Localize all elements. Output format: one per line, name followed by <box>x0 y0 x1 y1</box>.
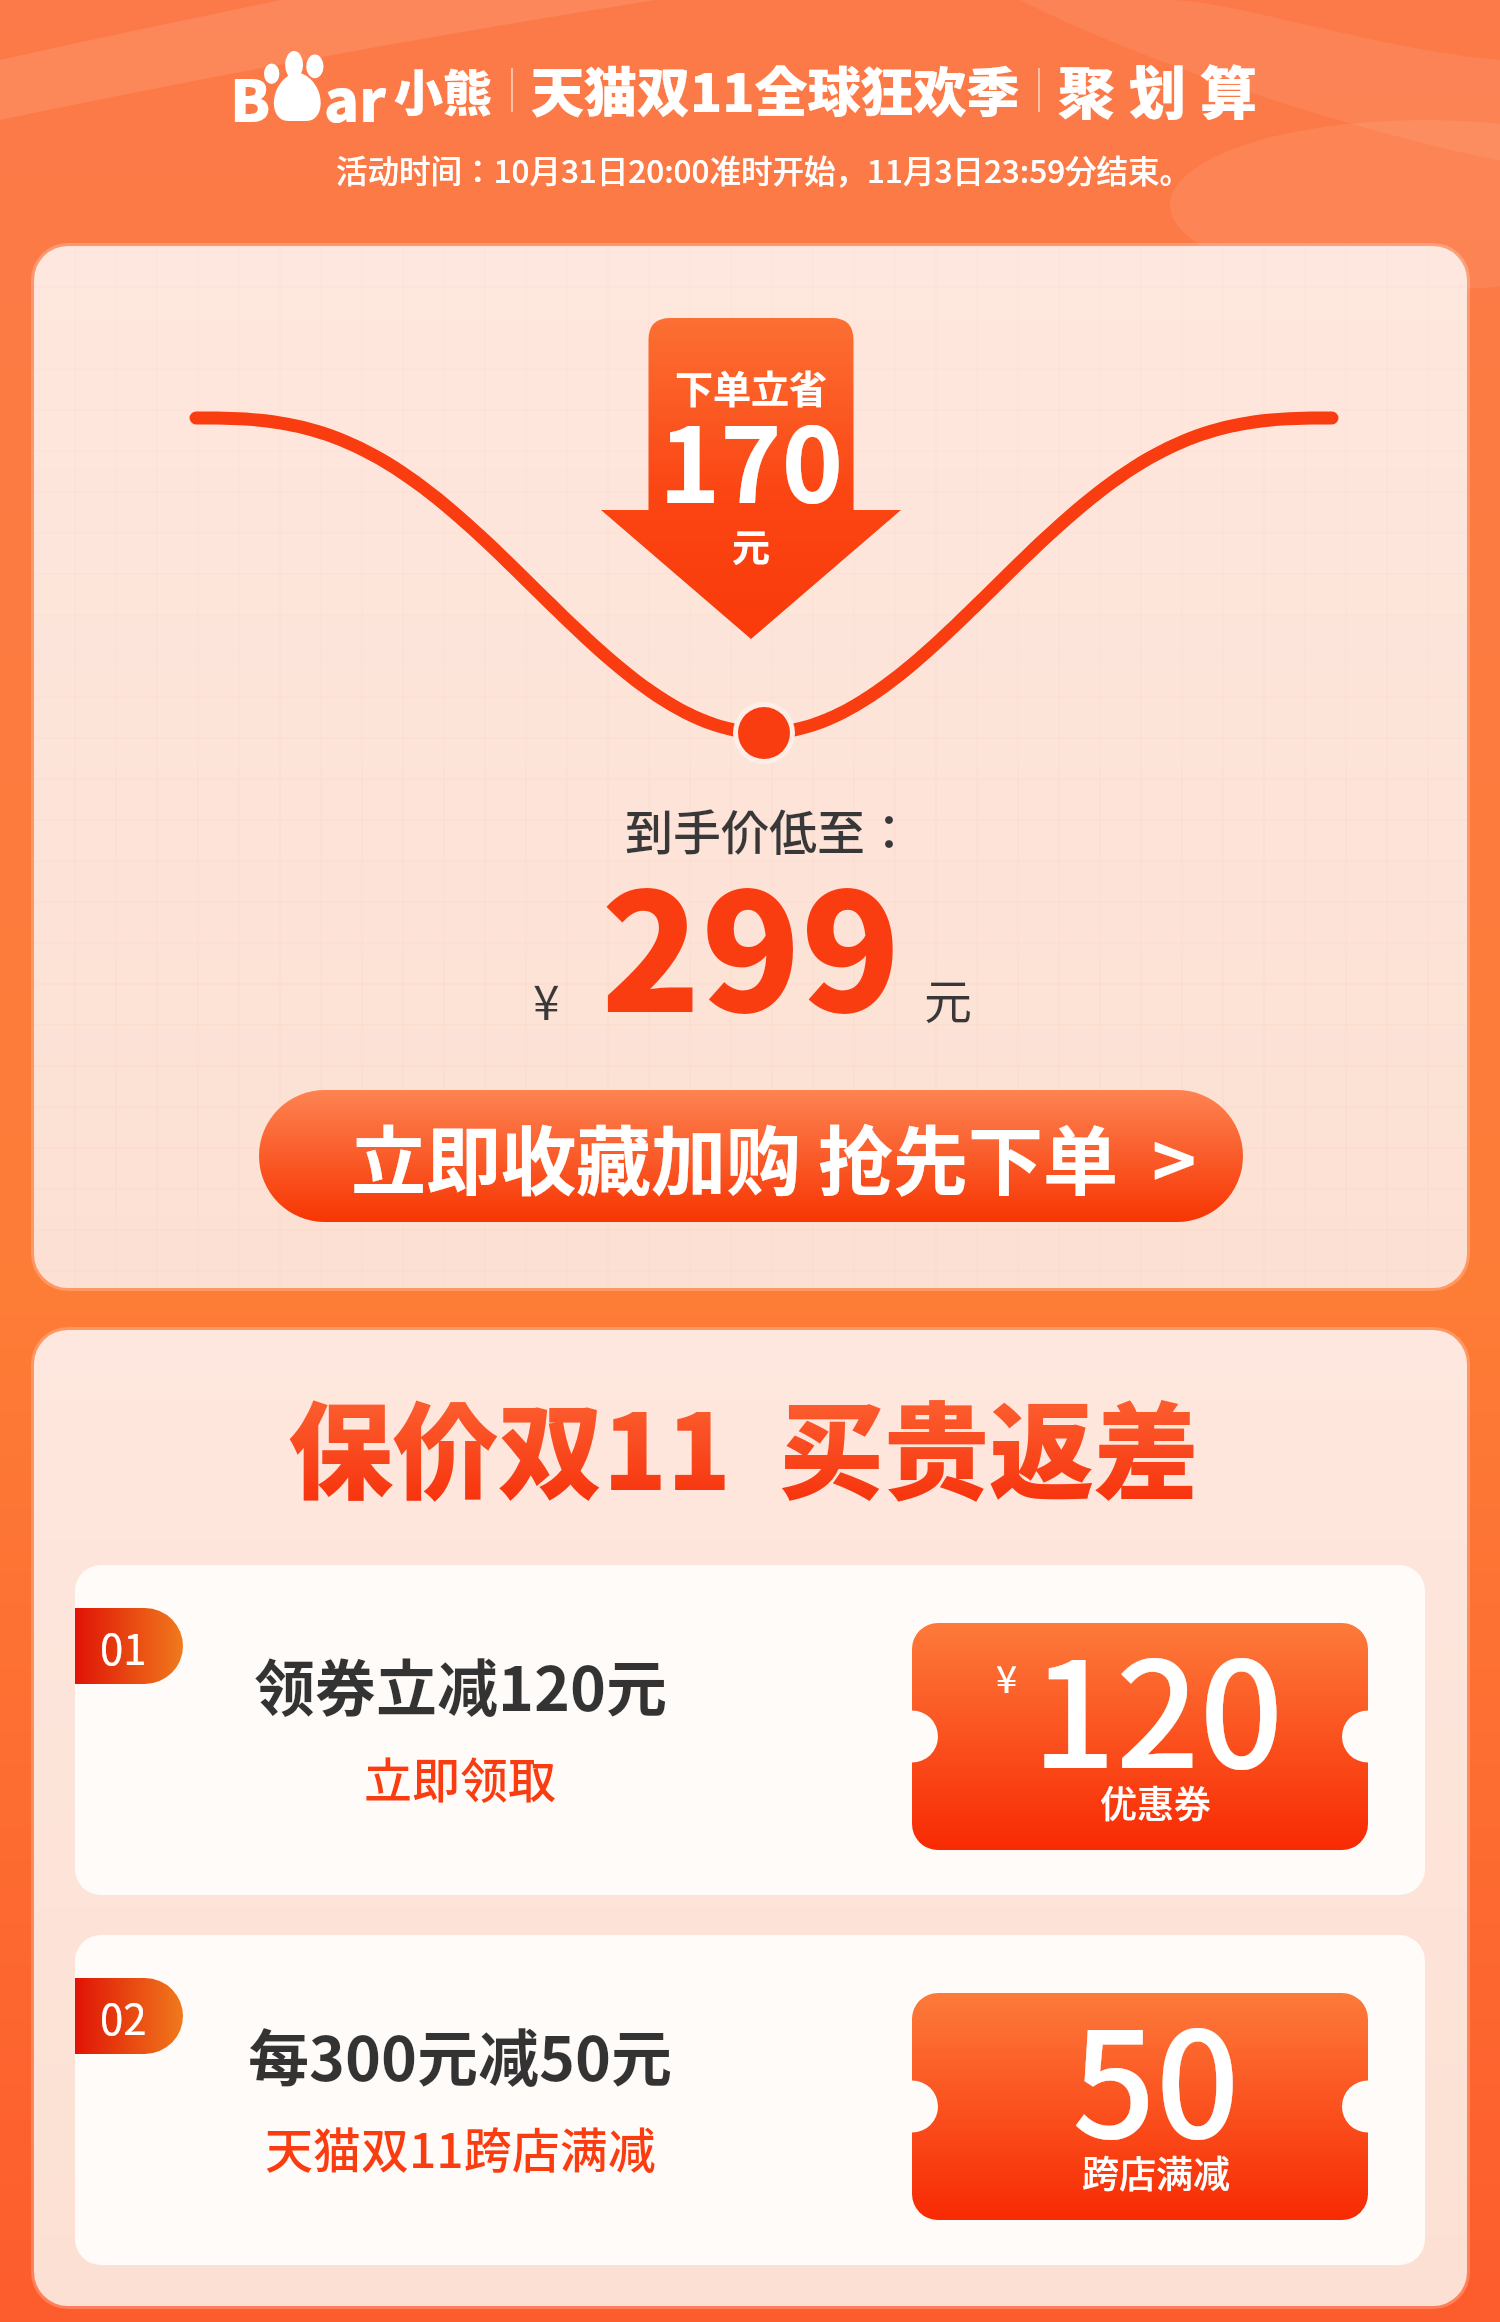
staticText: 02 <box>100 1986 147 2047</box>
staticText: 299 <box>601 822 901 1059</box>
button[interactable]: 02 <box>75 1935 1425 2265</box>
staticText: 跨店满减 <box>1082 2145 1230 2199</box>
staticText: 下单立省 <box>675 359 828 414</box>
staticText: 120 <box>1032 1597 1284 1810</box>
staticText: 优惠券 <box>1100 1775 1211 1829</box>
staticText: 活动时间：10月31日20:00准时开始，11月3日23:59分结束。 <box>336 146 1192 192</box>
staticText: 小熊 <box>394 54 493 125</box>
staticText: 元 <box>732 517 771 572</box>
staticText: 聚划算 <box>1058 48 1271 131</box>
staticText: 50 <box>1072 1967 1240 2180</box>
staticText: 保价双11 买贵返差 <box>288 1368 1199 1520</box>
staticText: 立即领取 <box>364 1742 557 1812</box>
staticText: 天猫双11跨店满减 <box>265 2112 656 2182</box>
staticText: 元 <box>924 963 973 1033</box>
staticText: 到手价低至： <box>625 794 914 864</box>
staticText: 01 <box>100 1616 147 1677</box>
staticText: ¥ <box>996 1649 1018 1704</box>
staticText: 领券立减120元 <box>254 1640 667 1728</box>
button[interactable]: 01 <box>75 1565 1425 1895</box>
button[interactable]: 立即收藏加购 抢先下单 > <box>259 1090 1243 1222</box>
staticText: 每300元减50元 <box>248 2010 672 2098</box>
staticText: ¥ <box>533 964 560 1034</box>
staticText: 立即收藏加购 抢先下单 > <box>351 1102 1197 1211</box>
staticText: 天猫双11全球狂欢季 <box>531 51 1020 128</box>
staticText: ar <box>324 55 387 125</box>
staticText: B <box>230 55 271 125</box>
staticText: 170 <box>659 382 844 533</box>
